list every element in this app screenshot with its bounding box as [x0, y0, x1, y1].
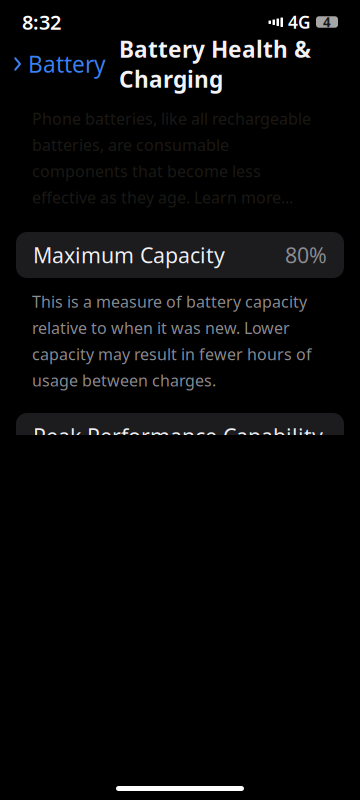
staticText: Peak Performance Capability	[33, 422, 323, 450]
staticText: In your region, iPhone will try to reduc…	[32, 781, 328, 800]
staticText: This is a measure of battery capacity re…	[32, 291, 312, 391]
staticText: 4G	[288, 10, 311, 33]
staticText: Maximum Capacity	[33, 241, 225, 269]
staticText: 8:32	[22, 9, 61, 35]
staticText: Battery	[28, 49, 106, 79]
button[interactable]: Battery	[12, 43, 106, 85]
button[interactable]: Peak Performance Capability	[0, 413, 360, 459]
staticText: Phone batteries, like all rechargeable b…	[32, 108, 311, 208]
staticText: 80%	[285, 241, 327, 269]
button[interactable]: Maximum Capacity	[0, 232, 360, 278]
staticText: Battery Health & Charging	[119, 34, 311, 94]
staticText: 4	[323, 13, 331, 31]
